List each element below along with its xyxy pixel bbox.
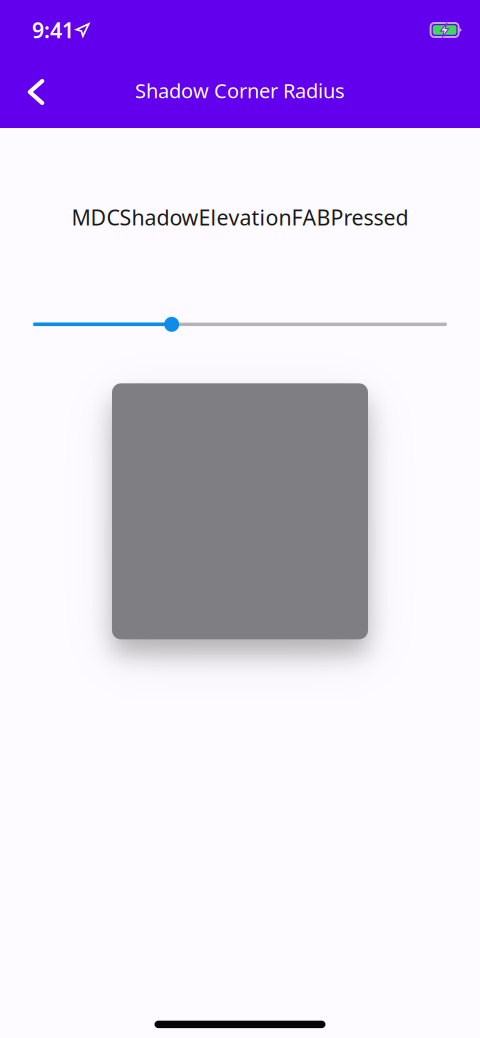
staticText: 9:41 — [32, 16, 74, 44]
button[interactable]: Shadow corner radius — [33, 310, 447, 338]
staticText: Shadow Corner Radius — [135, 77, 345, 104]
staticText: MDCShadowElevationFABPressed — [71, 203, 408, 231]
button[interactable]: Back — [13, 67, 59, 113]
